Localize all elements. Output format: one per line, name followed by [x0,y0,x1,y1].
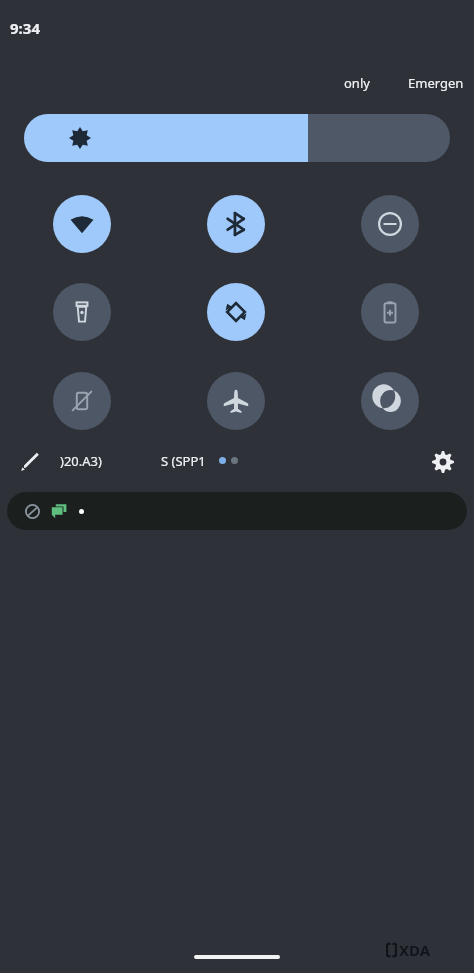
button[interactable]: Brightness [24,114,450,162]
button[interactable]: Do Not Disturb [361,195,419,253]
button[interactable] [7,492,467,530]
button[interactable]: Settings [424,443,462,481]
button[interactable]: Airplane mode [207,372,265,430]
staticText: )20.A3) [60,452,102,470]
staticText: XDA [399,940,431,960]
button[interactable]: Flashlight [53,283,111,341]
staticText: S (SPP1 [161,452,206,470]
staticText: only [344,74,370,92]
button[interactable]: Bluetooth [207,195,265,253]
staticText: 9:34 [10,18,40,38]
button[interactable]: Wi-Fi [53,195,111,253]
button[interactable]: Battery Saver [361,283,419,341]
button[interactable]: Mute [53,372,111,430]
button[interactable]: Night Light [361,372,419,430]
button[interactable]: Edit tiles [12,444,48,480]
button[interactable]: Auto-rotate [207,283,265,341]
staticText: Emergen [408,74,464,92]
